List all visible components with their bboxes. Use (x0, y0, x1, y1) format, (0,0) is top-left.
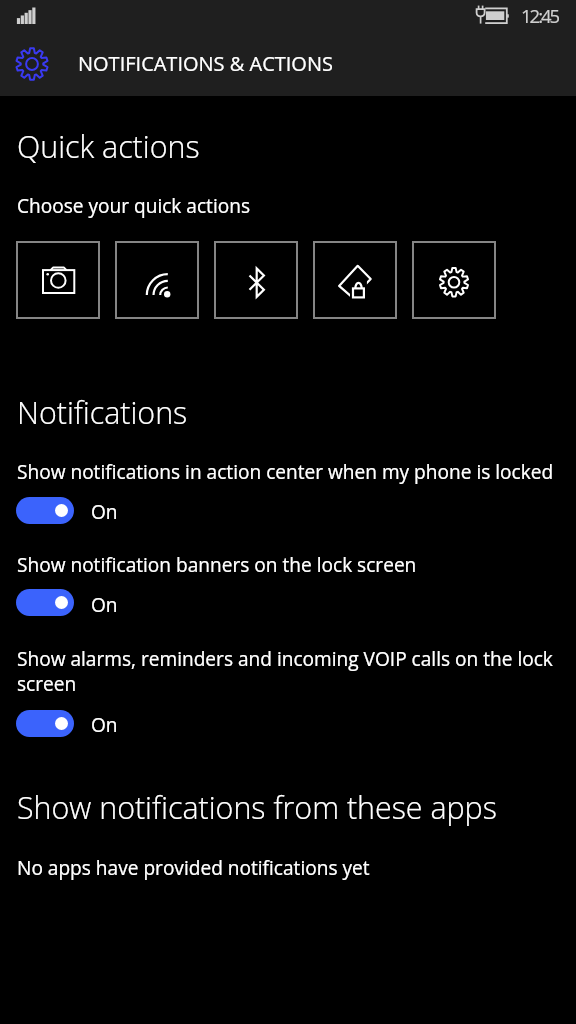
other: Settings (15, 47, 49, 81)
staticText: Show notifications from these apps (17, 787, 497, 828)
button[interactable]: Camera (16, 241, 100, 319)
staticText: Quick actions (17, 126, 200, 167)
staticText: Show notification banners on the lock sc… (17, 552, 417, 578)
button[interactable]: Bluetooth (214, 241, 298, 319)
button[interactable]: Toggle On (16, 589, 74, 616)
staticText: Choose your quick actions (17, 193, 251, 219)
staticText: Notifications (17, 392, 188, 433)
button[interactable]: Toggle On (16, 710, 74, 737)
staticText: On (91, 592, 118, 618)
staticText: Show notifications in action center when… (17, 459, 554, 485)
staticText: On (91, 499, 118, 525)
button[interactable]: Toggle On (16, 497, 74, 524)
staticText: On (91, 712, 118, 738)
staticText: 12:45 (521, 3, 559, 28)
button[interactable]: All settings (412, 241, 496, 319)
staticText: NOTIFICATIONS & ACTIONS (78, 50, 333, 77)
button[interactable]: Wi-Fi (115, 241, 199, 319)
staticText: Show alarms, reminders and incoming VOIP… (17, 646, 559, 697)
button[interactable]: Settings (0, 36, 576, 96)
staticText: No apps have provided notifications yet (17, 855, 370, 881)
button[interactable]: Rotation lock (313, 241, 397, 319)
